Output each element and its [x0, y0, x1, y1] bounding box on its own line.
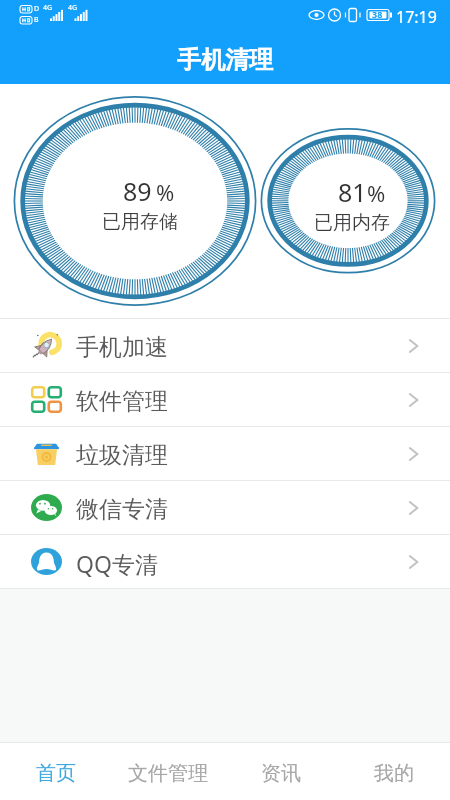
button[interactable]: 资讯: [224, 743, 337, 800]
button[interactable]: 文件管理: [112, 743, 224, 800]
staticText: 89: [123, 174, 152, 208]
staticText: 手机加速: [76, 333, 168, 362]
button[interactable]: 垃圾清理: [0, 427, 450, 480]
staticText: 17:19: [396, 6, 437, 28]
staticText: %: [156, 177, 175, 207]
staticText: 资讯: [261, 761, 301, 786]
staticText: 已用内存: [292, 211, 412, 235]
staticText: 81: [338, 175, 367, 209]
button[interactable]: QQ专清: [0, 535, 450, 588]
staticText: 文件管理: [128, 761, 208, 786]
staticText: 4G: [43, 3, 53, 13]
staticText: 38: [372, 8, 383, 20]
staticText: 4G: [68, 3, 78, 13]
staticText: 垃圾清理: [76, 441, 168, 470]
button[interactable]: 软件管理: [0, 373, 450, 426]
staticText: 微信专清: [76, 495, 168, 524]
staticText: %: [367, 178, 386, 208]
staticText: 我的: [374, 761, 414, 786]
staticText: D: [34, 4, 40, 14]
button[interactable]: 手机加速: [0, 319, 450, 372]
staticText: 手机清理: [177, 45, 273, 75]
staticText: 软件管理: [76, 387, 168, 416]
staticText: 首页: [36, 761, 76, 786]
button[interactable]: 微信专清: [0, 481, 450, 534]
staticText: B: [34, 15, 39, 25]
button[interactable]: 首页: [0, 743, 112, 800]
staticText: 已用存储: [80, 210, 200, 234]
staticText: QQ专清: [76, 548, 158, 579]
button[interactable]: 我的: [337, 743, 450, 800]
